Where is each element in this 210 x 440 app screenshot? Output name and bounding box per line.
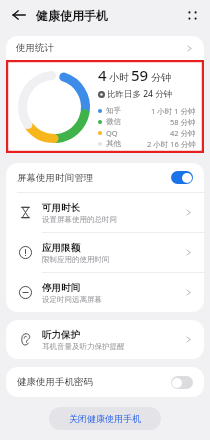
- staticText: 1 小时 1 分钟: [151, 106, 196, 116]
- staticText: 59: [131, 65, 149, 85]
- button[interactable]: 健康使用手机密码: [6, 367, 204, 397]
- staticText: 微信: [106, 117, 121, 126]
- staticText: 关闭健康使用手机: [69, 413, 141, 424]
- staticText: 停用时间: [42, 282, 80, 294]
- button[interactable]: Toggle off: [171, 376, 193, 389]
- staticText: 分钟: [151, 71, 171, 84]
- staticText: 知乎: [106, 106, 121, 115]
- button[interactable]: 使用统计: [6, 36, 204, 60]
- button[interactable]: 应用限额: [6, 233, 204, 272]
- staticText: 比昨日多 24 分钟: [107, 88, 173, 100]
- button[interactable]: 4: [6, 60, 204, 153]
- button[interactable]: 屏幕使用时间管理: [6, 163, 204, 192]
- staticText: 58 分钟: [170, 117, 196, 127]
- staticText: 健康使用手机密码: [17, 376, 93, 388]
- button[interactable]: Back: [6, 2, 32, 28]
- staticText: QQ: [106, 128, 118, 138]
- button[interactable]: More options: [180, 3, 204, 27]
- button[interactable]: 停用时间: [6, 273, 204, 312]
- staticText: 设置屏幕使用的总时间: [42, 215, 117, 224]
- button[interactable]: 关闭健康使用手机: [49, 407, 161, 430]
- staticText: 健康使用手机: [36, 8, 108, 23]
- staticText: 屏幕使用时间管理: [17, 172, 93, 184]
- staticText: 设定时间远离屏幕: [42, 295, 102, 304]
- staticText: 听力保护: [42, 329, 80, 341]
- staticText: 可用时长: [42, 202, 80, 214]
- button[interactable]: Toggle on: [171, 171, 193, 184]
- staticText: 限制应用的使用时间: [42, 255, 110, 264]
- staticText: 小时: [109, 71, 129, 84]
- staticText: 2 小时 16 分钟: [147, 139, 196, 149]
- button[interactable]: 可用时长: [6, 193, 204, 232]
- staticText: 42 分钟: [170, 128, 196, 138]
- staticText: 其他: [106, 139, 121, 148]
- staticText: 4: [98, 65, 107, 85]
- staticText: 使用统计: [16, 42, 54, 54]
- staticText: 应用限额: [42, 242, 80, 254]
- button[interactable]: 听力保护: [6, 320, 204, 359]
- staticText: 耳机音量及听力保护提醒: [42, 342, 125, 351]
